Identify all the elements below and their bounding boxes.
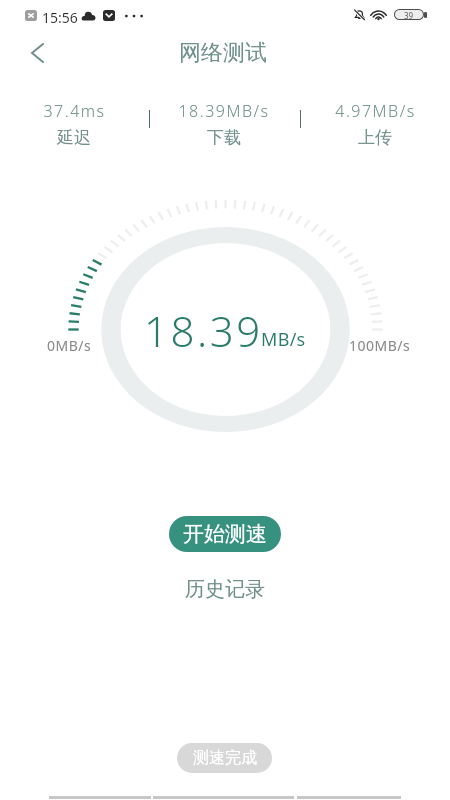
button[interactable]: Home: [153, 789, 294, 799]
staticText: 100MB/s: [349, 336, 411, 355]
staticText: 开始测速: [183, 521, 267, 547]
button[interactable]: 历史记录: [173, 574, 277, 604]
staticText: 延迟: [57, 127, 91, 148]
staticText: 下载: [207, 127, 241, 148]
staticText: 37.4ms: [43, 100, 106, 122]
staticText: 网络测试: [179, 39, 267, 67]
button[interactable]: 测速完成: [177, 743, 272, 773]
staticText: 上传: [358, 127, 392, 148]
staticText: 4.97MB/s: [335, 100, 416, 122]
staticText: 15:56: [42, 8, 78, 27]
button[interactable]: 18.39MB/s: [164, 100, 284, 148]
button[interactable]: Back: [21, 38, 54, 68]
button[interactable]: Back: [49, 789, 151, 799]
staticText: 18.39: [144, 302, 263, 359]
button[interactable]: 37.4ms: [14, 100, 134, 148]
staticText: 0MB/s: [47, 336, 92, 355]
staticText: 历史记录: [185, 577, 265, 602]
staticText: 18.39MB/s: [178, 100, 270, 122]
button[interactable]: 4.97MB/s: [315, 100, 435, 148]
staticText: MB/s: [261, 327, 306, 352]
button[interactable]: 开始测速: [169, 516, 281, 552]
staticText: 39: [404, 10, 414, 19]
button[interactable]: Recents: [297, 789, 401, 799]
staticText: 测速完成: [193, 748, 257, 768]
